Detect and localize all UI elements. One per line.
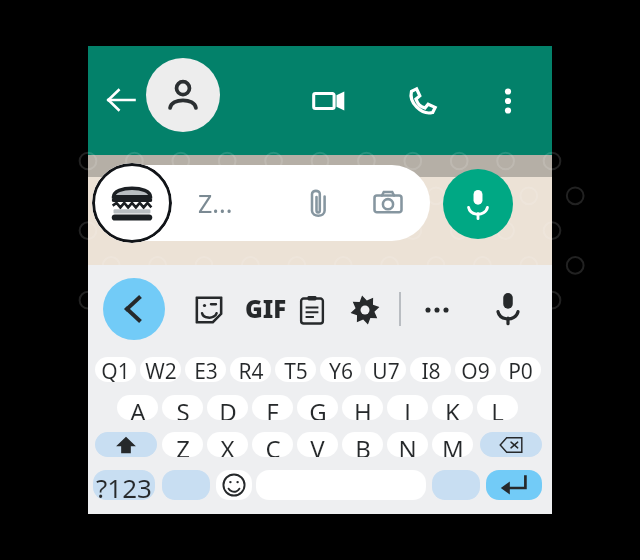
button[interactable]: W2 — [140, 357, 181, 382]
button[interactable]: Back — [96, 75, 146, 125]
staticText: O9 — [461, 357, 490, 382]
button[interactable]: Voice input — [489, 289, 527, 327]
button[interactable]: GIF — [238, 291, 294, 325]
button[interactable] — [486, 470, 542, 500]
staticText: C — [265, 432, 281, 457]
button[interactable] — [162, 470, 210, 500]
button[interactable]: G — [297, 395, 338, 420]
staticText: GIF — [245, 292, 287, 325]
button[interactable] — [95, 432, 157, 457]
staticText: J — [404, 395, 411, 420]
button[interactable]: More options — [485, 78, 531, 124]
button[interactable]: U7 — [365, 357, 406, 382]
staticText: N — [398, 432, 417, 457]
button[interactable]: M — [432, 432, 473, 457]
staticText: R4 — [238, 357, 264, 382]
staticText: V — [310, 432, 325, 457]
button[interactable]: S — [162, 395, 203, 420]
button[interactable]: More — [418, 291, 456, 329]
staticText: F — [266, 395, 279, 420]
button[interactable]: P0 — [500, 357, 541, 382]
button[interactable] — [432, 470, 480, 500]
staticText: D — [219, 395, 237, 420]
button[interactable]: O9 — [455, 357, 496, 382]
button[interactable] — [480, 432, 542, 457]
button[interactable]: Settings — [346, 291, 384, 329]
button[interactable]: Q1 — [95, 357, 136, 382]
button[interactable]: K — [432, 395, 473, 420]
staticText: Y6 — [329, 357, 353, 382]
button[interactable]: Z... — [100, 165, 430, 241]
button[interactable]: V — [297, 432, 338, 457]
button[interactable]: A — [117, 395, 158, 420]
button[interactable]: B — [342, 432, 383, 457]
button[interactable]: N — [387, 432, 428, 457]
button[interactable] — [216, 470, 252, 500]
button[interactable]: E3 — [185, 357, 226, 382]
staticText: U7 — [372, 357, 400, 382]
button[interactable]: Y6 — [320, 357, 361, 382]
button[interactable]: Z — [162, 432, 203, 457]
button[interactable]: H — [342, 395, 383, 420]
staticText: B — [355, 432, 371, 457]
staticText: A — [130, 395, 146, 420]
button[interactable]: Camera — [366, 181, 410, 225]
staticText: H — [354, 395, 372, 420]
button[interactable]: Attach — [296, 181, 340, 225]
staticText: X — [220, 432, 235, 457]
staticText: L — [491, 395, 504, 420]
staticText: E3 — [194, 357, 218, 382]
staticText: Z — [176, 432, 190, 457]
button[interactable]: ?123 — [93, 470, 155, 500]
staticText: S — [176, 395, 190, 420]
staticText: ?123 — [96, 470, 152, 500]
button[interactable]: R4 — [230, 357, 271, 382]
staticText: Q1 — [101, 357, 130, 382]
button[interactable]: Voice message — [443, 169, 513, 239]
button[interactable]: Voice call — [400, 78, 446, 124]
staticText: K — [445, 395, 460, 420]
button[interactable]: X — [207, 432, 248, 457]
staticText: P0 — [508, 357, 533, 382]
staticText: T5 — [284, 357, 308, 382]
button[interactable]: Stickers — [190, 291, 228, 329]
button[interactable]: F — [252, 395, 293, 420]
staticText: I8 — [421, 357, 441, 382]
button[interactable]: J — [387, 395, 428, 420]
staticText: Z... — [198, 186, 233, 220]
button[interactable]: Profile — [92, 163, 172, 243]
button[interactable]: I8 — [410, 357, 451, 382]
button[interactable]: Video call — [306, 78, 352, 124]
button[interactable]: L — [477, 395, 518, 420]
button[interactable]: D — [207, 395, 248, 420]
button[interactable]: T5 — [275, 357, 316, 382]
staticText: G — [309, 395, 327, 420]
staticText: M — [442, 432, 464, 457]
staticText: W2 — [145, 357, 177, 382]
button[interactable]: Clipboard — [293, 291, 331, 329]
button[interactable]: Contact avatar — [146, 58, 220, 132]
button[interactable]: Back — [103, 278, 165, 340]
button[interactable]: C — [252, 432, 293, 457]
